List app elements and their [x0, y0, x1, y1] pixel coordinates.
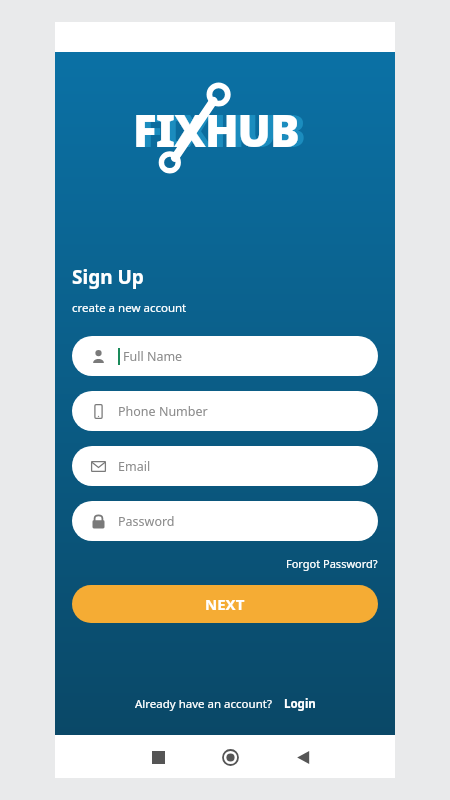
button[interactable]: Password [72, 501, 378, 541]
staticText: Phone Number [118, 403, 208, 420]
staticText: FIXHUB [133, 100, 299, 160]
staticText: Forgot Password? [286, 556, 378, 571]
staticText: NEXT [205, 594, 245, 614]
staticText: FIXHUB [139, 100, 305, 160]
staticText: Full Name [123, 348, 183, 365]
staticText: Login [284, 696, 316, 712]
button[interactable]: Home [209, 736, 251, 778]
button[interactable]: Email [72, 446, 378, 486]
button[interactable]: Back [282, 736, 324, 778]
button[interactable]: Recent apps [137, 736, 179, 778]
staticText: Sign Up [72, 264, 144, 290]
button[interactable]: Full Name [72, 336, 378, 376]
staticText: Password [118, 513, 175, 530]
button[interactable]: Phone Number [72, 391, 378, 431]
button[interactable]: Login [284, 696, 316, 712]
button[interactable]: Forgot Password? [72, 556, 378, 571]
staticText: create a new account [72, 300, 187, 316]
staticText: Already have an account? [135, 696, 272, 712]
button[interactable]: NEXT [72, 585, 378, 623]
staticText: Email [118, 458, 151, 475]
